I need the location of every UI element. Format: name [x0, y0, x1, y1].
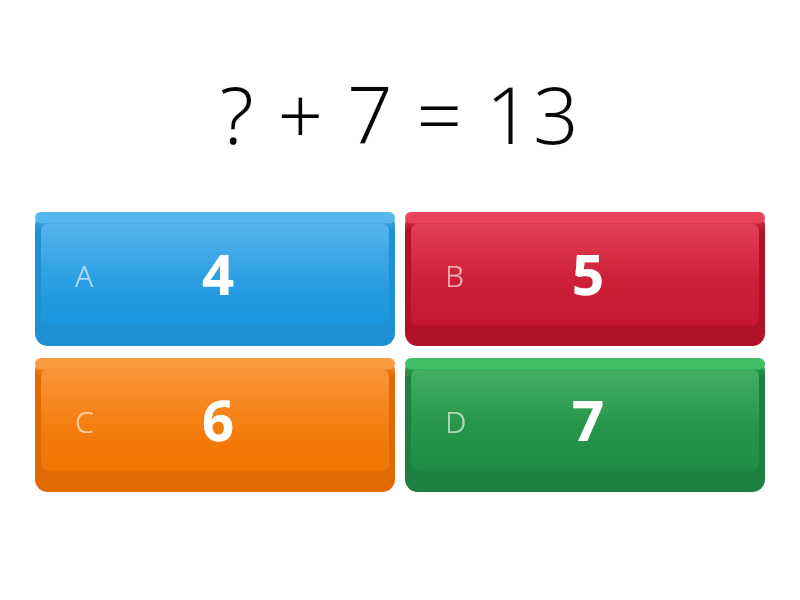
staticText: 6	[202, 381, 235, 457]
staticText: B	[445, 255, 464, 296]
staticText: ? + 7 = 13	[0, 58, 800, 167]
staticText: C	[75, 401, 94, 442]
button[interactable]: Answer C, 6	[35, 358, 395, 492]
button[interactable]: Answer D, 7	[405, 358, 765, 492]
staticText: 4	[202, 235, 235, 311]
staticText: 7	[572, 381, 605, 457]
staticText: A	[75, 255, 94, 296]
staticText: 5	[572, 235, 605, 311]
button[interactable]: Answer A, 4	[35, 212, 395, 346]
staticText: D	[445, 401, 467, 442]
button[interactable]: Answer B, 5	[405, 212, 765, 346]
